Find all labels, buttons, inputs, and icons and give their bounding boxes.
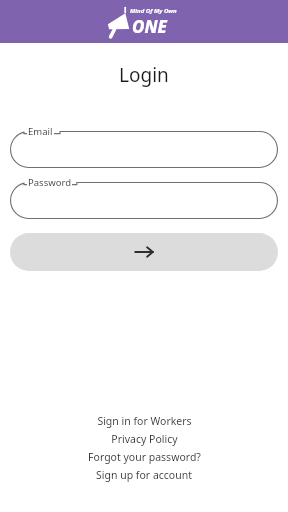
staticText: Forgot your password? <box>88 450 201 464</box>
button[interactable]: Sign up for account <box>0 466 288 484</box>
button[interactable]: Forgot your password? <box>0 448 288 466</box>
button[interactable]: Privacy Policy <box>0 430 288 448</box>
staticText: Email <box>28 125 53 138</box>
staticText: Login <box>119 62 169 88</box>
button[interactable]: Password <box>10 182 278 219</box>
staticText: Sign in for Workers <box>97 414 192 428</box>
staticText: Sign up for account <box>96 468 192 482</box>
staticText: Privacy Policy <box>111 432 178 446</box>
button[interactable]: Email <box>10 131 278 168</box>
staticText: Password <box>28 176 71 189</box>
staticText: Mind Of My Own <box>130 7 177 15</box>
staticText: ONE <box>132 15 168 38</box>
button[interactable]: Submit <box>10 233 278 271</box>
button[interactable]: Sign in for Workers <box>0 412 288 430</box>
